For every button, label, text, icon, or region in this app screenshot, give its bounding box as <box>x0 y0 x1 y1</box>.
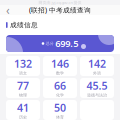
staticText: 历史 <box>19 115 27 119</box>
button[interactable]: 77 <box>6 78 40 98</box>
staticText: 总分 <box>46 41 54 46</box>
button[interactable]: 146 <box>43 56 77 76</box>
staticText: 成绩信息 <box>10 21 38 29</box>
button[interactable]: Back <box>0 5 16 15</box>
staticText: 146 <box>51 56 69 71</box>
staticText: 77 <box>17 78 29 93</box>
button[interactable]: 66 <box>43 78 77 98</box>
button[interactable]: 50 <box>43 100 77 120</box>
staticText: 物理 <box>19 93 27 97</box>
staticText: (联招) 中考成绩查询 <box>29 6 91 14</box>
staticText: 142 <box>88 56 106 71</box>
staticText: 50 <box>54 100 66 115</box>
staticText: 699.5 <box>55 37 78 50</box>
staticText: 41 <box>17 100 29 115</box>
button[interactable]: 142 <box>80 56 114 76</box>
staticText: 数学 <box>56 71 64 75</box>
staticText: ‹ <box>6 2 10 18</box>
staticText: 化学 <box>56 93 64 97</box>
staticText: 66 <box>54 78 66 93</box>
staticText: 45.5 <box>86 78 107 93</box>
button[interactable]: 41 <box>6 100 40 120</box>
staticText: 132 <box>14 56 32 71</box>
staticText: 道德与法治 <box>87 93 107 97</box>
staticText: 体育 <box>56 115 64 119</box>
staticText: 外语 <box>93 71 101 75</box>
staticText: 网页由 jyj.cq.gov.cn 提供 <box>38 0 81 5</box>
button[interactable]: 45.5 <box>80 78 114 98</box>
staticText: 语文 <box>19 71 27 75</box>
button[interactable]: 132 <box>6 56 40 76</box>
